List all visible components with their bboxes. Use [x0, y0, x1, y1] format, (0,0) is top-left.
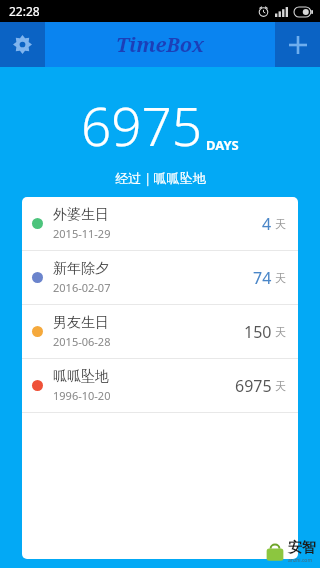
staticText: 6975	[235, 375, 272, 397]
button[interactable]: 男友生日	[22, 305, 298, 358]
button[interactable]: 呱呱坠地	[22, 359, 298, 412]
staticText: 22:28	[9, 3, 40, 19]
staticText: 天	[275, 217, 286, 231]
staticText: TimeBox	[116, 31, 205, 58]
staticText: 天	[275, 271, 286, 285]
staticText: 男友生日	[53, 314, 109, 332]
staticText: 呱呱坠地	[53, 368, 109, 386]
button[interactable]: Settings	[0, 22, 45, 67]
button[interactable]: 外婆生日	[22, 197, 298, 250]
staticText: 2015-11-29	[53, 226, 111, 241]
staticText: 74	[253, 267, 272, 289]
staticText: 1996-10-20	[53, 388, 111, 403]
button[interactable]: 新年除夕	[22, 251, 298, 304]
staticText: 150	[244, 321, 272, 343]
staticText: 天	[275, 325, 286, 339]
staticText: anzhi.com	[288, 557, 313, 564]
staticText: 2015-06-28	[53, 334, 111, 349]
staticText: 6975	[81, 89, 203, 161]
staticText: 经过｜呱呱坠地	[115, 170, 206, 186]
staticText: 2016-02-07	[53, 280, 111, 295]
staticText: 新年除夕	[53, 260, 109, 278]
staticText: DAYS	[206, 136, 239, 154]
staticText: 安智	[288, 539, 316, 557]
staticText: 天	[275, 379, 286, 393]
staticText: 外婆生日	[53, 206, 109, 224]
button[interactable]: Add	[275, 22, 320, 67]
staticText: 4	[262, 213, 272, 235]
